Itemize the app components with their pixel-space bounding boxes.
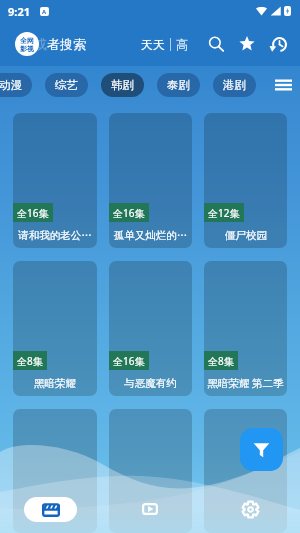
- button[interactable]: 港剧: [213, 73, 256, 97]
- staticText: 韩剧: [111, 78, 134, 92]
- staticText: 者搜索: [47, 36, 86, 52]
- staticText: 或: [34, 36, 47, 52]
- staticText: 全网: [20, 36, 34, 45]
- button[interactable]: 韩剧: [101, 73, 144, 97]
- staticText: 请和我的老公结婚: [16, 229, 94, 242]
- button[interactable]: Videos: [133, 492, 167, 526]
- staticText: 全8集: [17, 354, 43, 368]
- staticText: 黑暗荣耀 第二季: [207, 376, 284, 390]
- button[interactable]: Filter: [240, 428, 283, 471]
- button[interactable]: 全12集: [204, 113, 287, 248]
- staticText: 高: [176, 37, 188, 52]
- button[interactable]: 泰剧: [157, 73, 200, 97]
- button[interactable]: 全16集: [109, 113, 192, 248]
- staticText: 僵尸校园: [225, 229, 267, 242]
- button[interactable]: Movies: [24, 497, 77, 522]
- button[interactable]: History: [265, 31, 291, 57]
- staticText: 综艺: [55, 78, 78, 92]
- button[interactable]: 全8集: [204, 261, 287, 396]
- button[interactable]: Favorites: [234, 31, 260, 57]
- staticText: 全16集: [17, 206, 49, 220]
- button[interactable]: 全网影视 logo: [15, 32, 39, 56]
- button[interactable]: [13, 409, 97, 533]
- button[interactable]: 动漫: [0, 73, 32, 97]
- staticText: 黑暗荣耀: [34, 377, 76, 390]
- staticText: 动漫: [0, 78, 22, 92]
- staticText: 全16集: [113, 206, 145, 220]
- staticText: 9:21: [8, 4, 30, 19]
- staticText: 全8集: [208, 354, 234, 368]
- staticText: 与恶魔有约: [124, 377, 177, 390]
- staticText: 全16集: [113, 354, 145, 368]
- button[interactable]: 综艺: [45, 73, 88, 97]
- staticText: 港剧: [223, 78, 246, 92]
- staticText: 天天: [141, 37, 165, 52]
- staticText: 影视: [20, 44, 34, 53]
- button[interactable]: 全8集: [13, 261, 97, 396]
- button[interactable]: Menu: [267, 69, 299, 101]
- button[interactable]: 全16集: [13, 113, 97, 248]
- staticText: 孤单又灿烂的神：鬼怪: [112, 229, 189, 242]
- staticText: 泰剧: [167, 78, 190, 92]
- staticText: 全12集: [208, 206, 240, 220]
- button[interactable]: Settings: [233, 492, 267, 526]
- staticText: A: [42, 8, 47, 16]
- button[interactable]: [204, 409, 287, 533]
- button[interactable]: Search: [203, 31, 229, 57]
- button[interactable]: [109, 409, 192, 533]
- button[interactable]: 全16集: [109, 261, 192, 396]
